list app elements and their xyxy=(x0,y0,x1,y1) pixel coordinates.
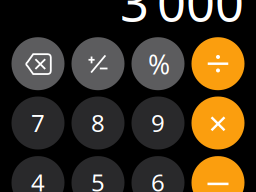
button[interactable]: Divide xyxy=(0,0,256,192)
button[interactable]: 5 xyxy=(0,0,256,192)
button[interactable]: % xyxy=(0,0,256,192)
staticText: % xyxy=(148,46,170,82)
staticText: 6 xyxy=(151,166,165,192)
button[interactable]: 9 xyxy=(0,0,256,192)
button[interactable]: 7 xyxy=(0,0,256,192)
staticText: 9 xyxy=(151,107,165,139)
button[interactable]: 8 xyxy=(0,0,256,192)
button[interactable]: 6 xyxy=(0,0,256,192)
button[interactable]: 4 xyxy=(0,0,256,192)
staticText: 7 xyxy=(31,107,45,139)
button[interactable]: Multiply xyxy=(0,0,256,192)
button[interactable]: Toggle sign xyxy=(0,0,256,192)
staticText: 5 xyxy=(91,166,105,192)
staticText: 4 xyxy=(31,166,45,192)
button[interactable]: Delete xyxy=(0,0,256,192)
staticText: 3 000 xyxy=(120,0,244,35)
staticText: 8 xyxy=(91,107,105,139)
button[interactable]: Subtract xyxy=(0,0,256,192)
